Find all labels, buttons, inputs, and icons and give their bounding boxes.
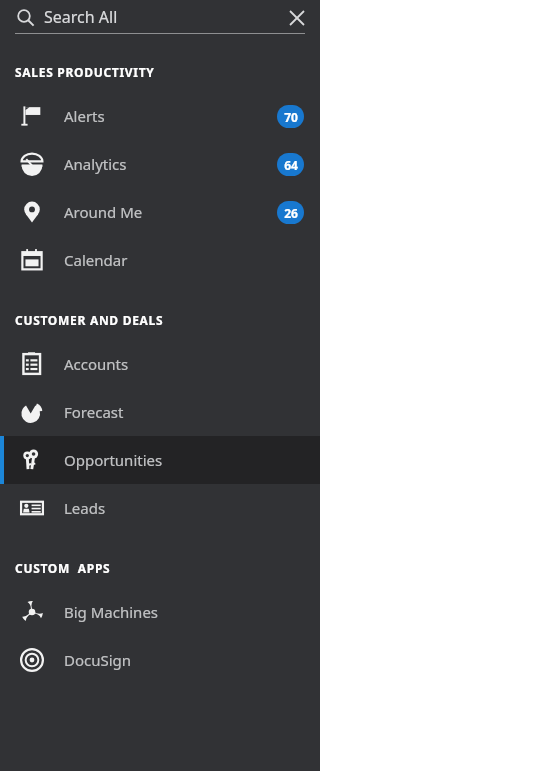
button[interactable]: Accounts — [0, 340, 320, 388]
staticText: CUSTOMER AND DEALS — [15, 312, 164, 328]
staticText: Search All — [44, 6, 118, 28]
staticText: Alerts — [64, 106, 105, 126]
staticText: Forecast — [64, 402, 124, 422]
button[interactable]: Analytics — [0, 140, 320, 188]
staticText: 26 — [284, 205, 298, 221]
button[interactable]: Calendar — [0, 236, 320, 284]
staticText: Analytics — [64, 154, 127, 174]
staticText: 70 — [284, 109, 298, 125]
staticText: Calendar — [64, 250, 128, 270]
staticText: Leads — [64, 498, 106, 518]
button[interactable]: Leads — [0, 484, 320, 532]
button[interactable]: Around Me — [0, 188, 320, 236]
button[interactable]: Big Machines — [0, 588, 320, 636]
staticText: Accounts — [64, 354, 129, 374]
staticText: Around Me — [64, 202, 143, 222]
staticText: 64 — [284, 157, 298, 173]
staticText: Opportunities — [64, 450, 163, 470]
button[interactable]: DocuSign — [0, 636, 320, 684]
staticText: Big Machines — [64, 602, 159, 622]
staticText: SALES PRODUCTIVITY — [15, 64, 155, 80]
button[interactable]: Opportunities — [0, 436, 320, 484]
staticText: CUSTOM APPS — [15, 560, 111, 576]
button[interactable]: Alerts — [0, 92, 320, 140]
button[interactable]: Clear search — [279, 0, 315, 36]
staticText: DocuSign — [64, 650, 132, 670]
button[interactable]: Search All — [0, 0, 320, 42]
button[interactable]: Forecast — [0, 388, 320, 436]
